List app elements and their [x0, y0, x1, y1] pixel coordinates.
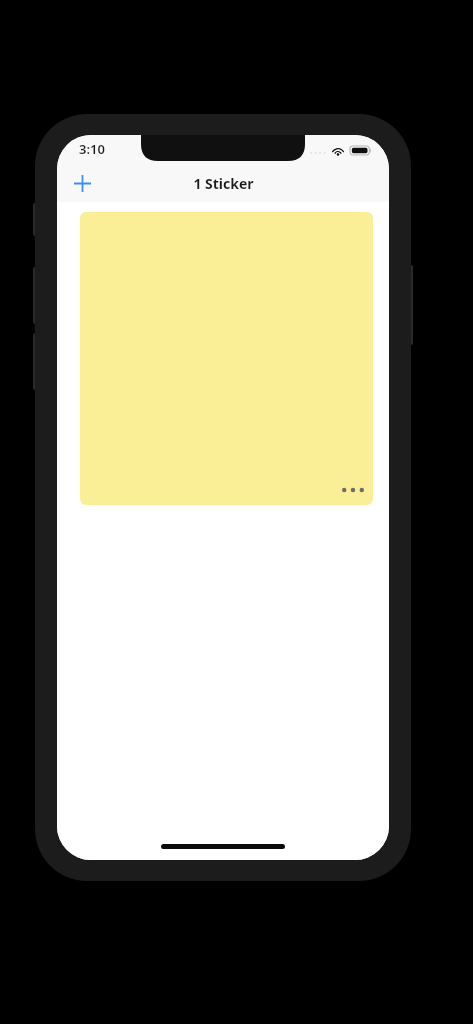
button[interactable]: Sticker options — [80, 212, 373, 505]
staticText: 1 Sticker — [193, 174, 254, 193]
button[interactable]: Sticker options — [333, 475, 373, 505]
staticText: 3:10 — [79, 140, 105, 158]
button[interactable]: Add sticker — [57, 165, 107, 202]
